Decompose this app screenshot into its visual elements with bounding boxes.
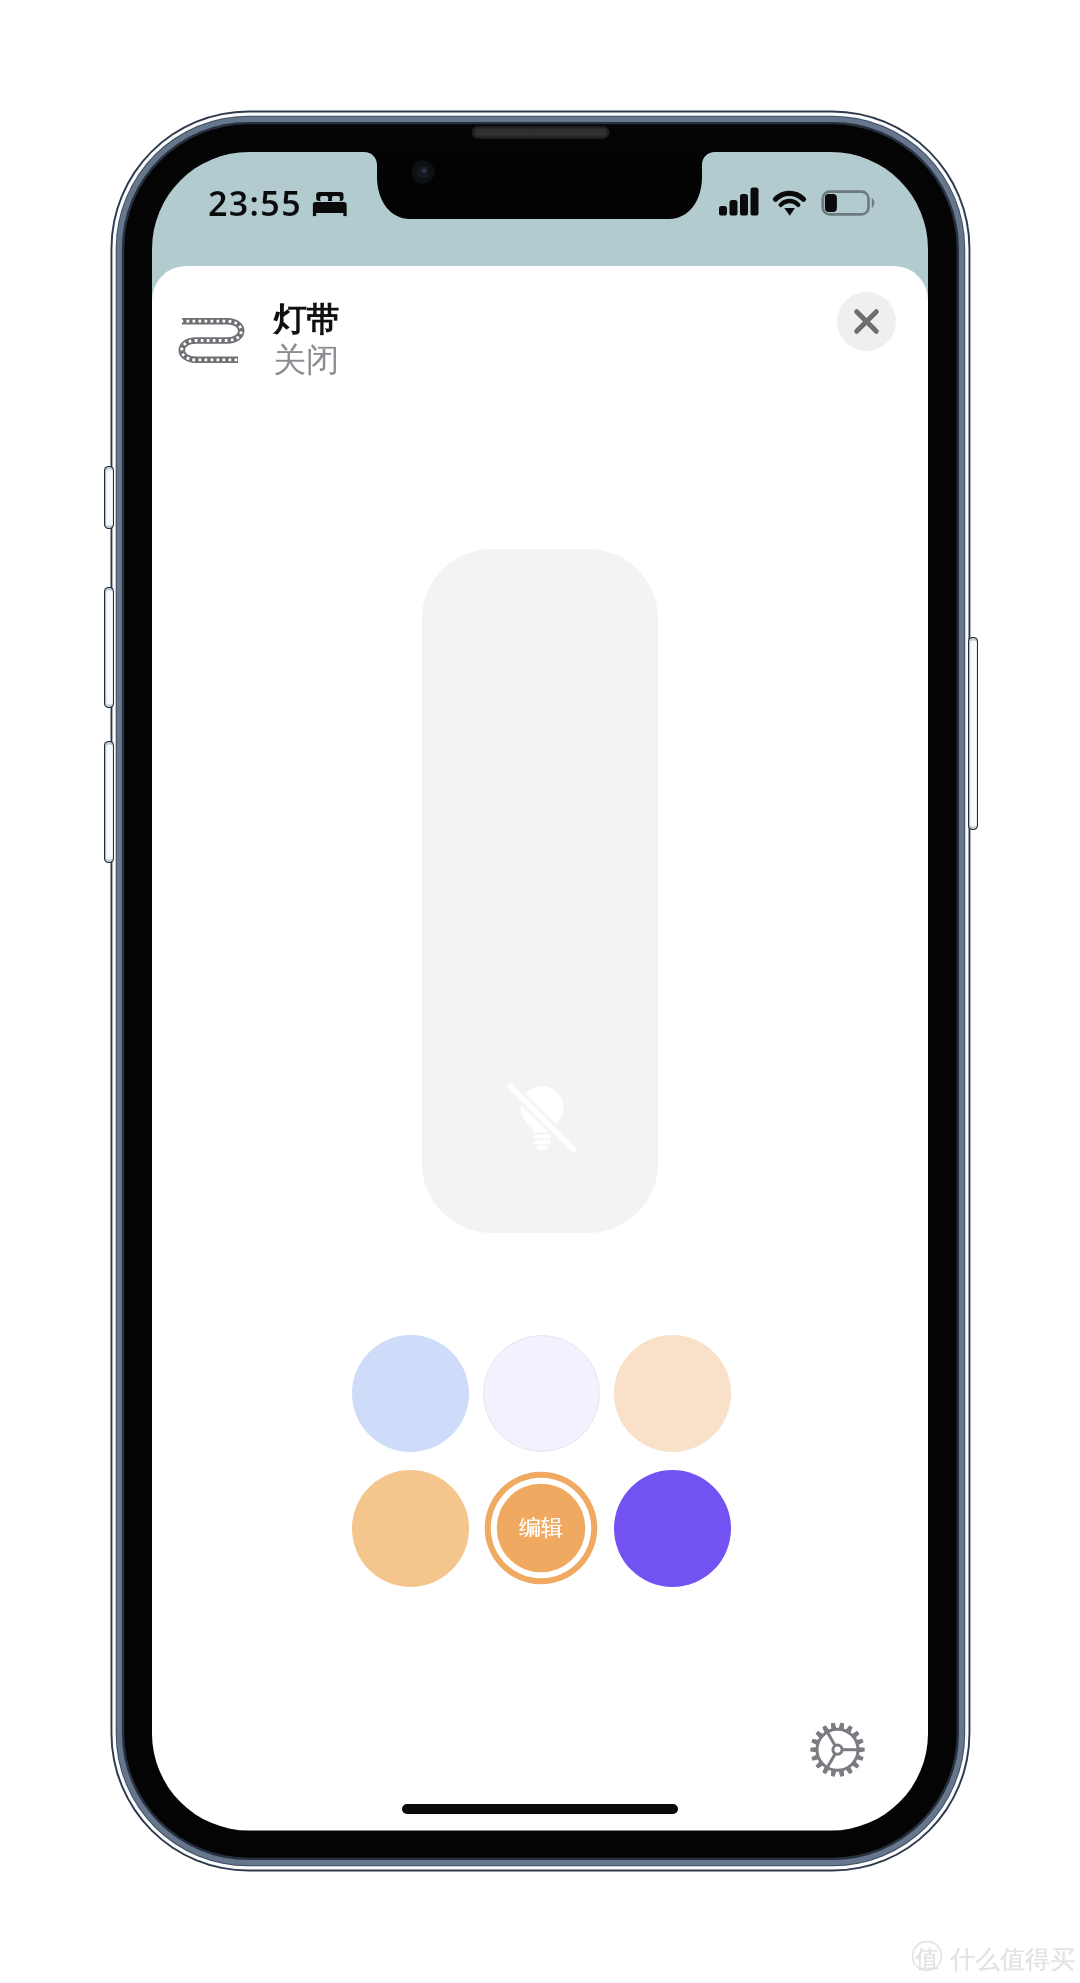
- button[interactable]: Colour preset 3: [614, 1335, 731, 1452]
- staticText: 灯带: [273, 299, 339, 341]
- button[interactable]: Colour preset 2: [483, 1335, 600, 1452]
- button[interactable]: Close: [837, 292, 896, 351]
- button[interactable]: Settings: [810, 1723, 866, 1779]
- staticText: 什么值得买: [950, 1944, 1075, 1975]
- button[interactable]: Colour preset 1: [352, 1335, 469, 1452]
- button[interactable]: 编辑: [484, 1471, 598, 1585]
- staticText: 编辑: [519, 1514, 563, 1542]
- staticText: 关闭: [273, 339, 339, 381]
- button[interactable]: Colour preset 6: [614, 1470, 731, 1587]
- button[interactable]: Colour preset 4: [352, 1470, 469, 1587]
- staticText: 值: [915, 1944, 939, 1974]
- staticText: 23:55: [208, 180, 302, 226]
